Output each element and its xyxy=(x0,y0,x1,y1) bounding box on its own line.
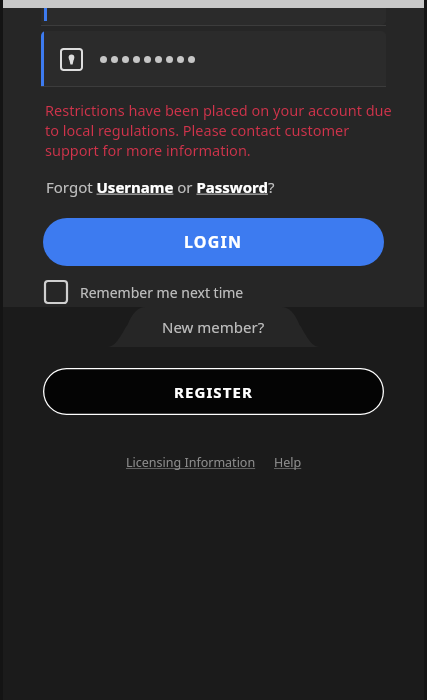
staticText: Help xyxy=(274,454,302,471)
button[interactable]: Help xyxy=(272,451,304,474)
other: Password xyxy=(61,49,82,70)
staticText: REGISTER xyxy=(174,382,253,402)
staticText: Forgot Username or Password? xyxy=(46,177,275,197)
staticText: LOGIN xyxy=(184,231,243,253)
button[interactable]: Forgot Username or Password? xyxy=(45,175,276,199)
button[interactable]: New member? xyxy=(136,311,291,343)
button[interactable]: Licensing Information xyxy=(124,451,258,474)
staticText: Restrictions have been placed on your ac… xyxy=(45,100,392,160)
button[interactable]: REGISTER xyxy=(43,368,384,415)
button[interactable]: Remember me next time xyxy=(45,279,254,305)
staticText: Remember me next time xyxy=(80,283,244,302)
button[interactable]: Password xyxy=(41,31,386,87)
staticText: Licensing Information xyxy=(126,454,256,471)
staticText: New member? xyxy=(162,317,265,337)
button[interactable]: LOGIN xyxy=(43,218,384,266)
